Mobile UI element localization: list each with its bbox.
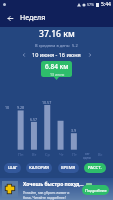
staticText: Пт bbox=[72, 152, 77, 157]
staticText: 5:44 bbox=[101, 1, 111, 8]
button[interactable]: Previous week bbox=[19, 50, 28, 59]
staticText: Вс bbox=[98, 152, 103, 157]
staticText: 10 июня - 16 июня bbox=[32, 51, 81, 58]
staticText: Чт bbox=[59, 152, 64, 157]
button[interactable]: Back bbox=[3, 11, 17, 25]
staticText: 37.16 км bbox=[39, 28, 75, 40]
staticText: Узнайте, как убрать живот и bbox=[23, 190, 70, 195]
staticText: сег bbox=[85, 152, 90, 156]
staticText: ВРЕМЯ bbox=[61, 165, 76, 171]
staticText: РАССТ. bbox=[88, 165, 102, 171]
staticText: 6.57 bbox=[30, 117, 38, 122]
staticText: 3.9 bbox=[71, 128, 77, 133]
button[interactable]: КАЛОРИЯ bbox=[26, 163, 52, 173]
staticText: Ср bbox=[45, 152, 50, 157]
staticText: одня bbox=[83, 156, 91, 160]
staticText: В среднем в день: 5.2 bbox=[35, 43, 78, 48]
staticText: Подробнее bbox=[85, 188, 107, 193]
staticText: 57% bbox=[87, 2, 95, 7]
staticText: 10.57 bbox=[42, 100, 52, 105]
staticText: 13 июня bbox=[50, 72, 65, 77]
staticText: 6.84 км bbox=[45, 62, 69, 71]
staticText: Неделя bbox=[20, 13, 46, 23]
staticText: Хочешь быстро похуд... bbox=[23, 181, 84, 188]
button[interactable]: Next week bbox=[85, 50, 94, 59]
button[interactable]: Хочешь быстро похуд... bbox=[0, 178, 113, 200]
button[interactable]: Подробнее bbox=[82, 185, 109, 195]
staticText: Пн bbox=[18, 152, 24, 157]
staticText: бока. Читайте подробнее! bbox=[23, 195, 66, 200]
staticText: 9.28 bbox=[17, 105, 25, 110]
staticText: КАЛОРИЯ bbox=[29, 165, 50, 171]
staticText: 10 bbox=[5, 105, 10, 110]
button[interactable]: ШАГ bbox=[4, 163, 21, 173]
staticText: ШАГ bbox=[8, 165, 18, 171]
staticText: Вт bbox=[32, 152, 37, 157]
button[interactable]: РАССТ. bbox=[84, 163, 106, 173]
button[interactable]: ВРЕМЯ bbox=[58, 163, 79, 173]
